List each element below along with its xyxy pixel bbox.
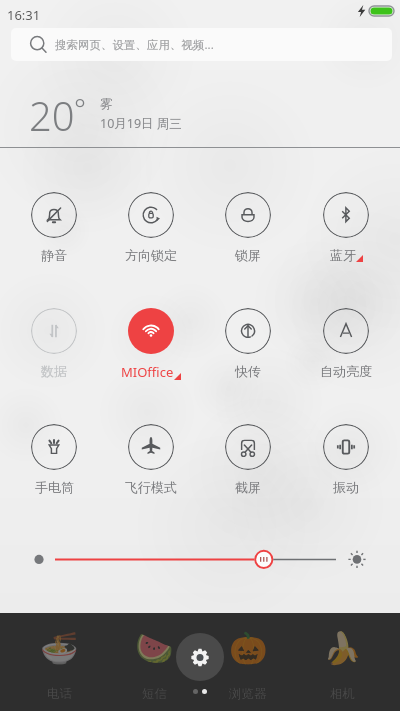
button[interactable]: MIOffice: [103, 304, 199, 382]
staticText: 数据: [41, 363, 67, 379]
staticText: 相机: [330, 686, 355, 702]
staticText: 🍌: [323, 630, 362, 666]
staticText: 电话: [47, 686, 72, 702]
staticText: 雾: [100, 96, 113, 112]
staticText: MIOffice: [121, 363, 174, 381]
button[interactable]: 方向锁定: [103, 188, 199, 266]
staticText: 快传: [235, 363, 261, 379]
staticText: 🎃: [229, 630, 268, 666]
button[interactable]: 🍌: [296, 613, 388, 711]
button[interactable]: 快传: [200, 304, 296, 382]
button[interactable]: 20: [0, 80, 400, 140]
button[interactable]: 截屏: [200, 420, 296, 498]
staticText: 方向锁定: [125, 247, 177, 263]
staticText: 浏览器: [229, 686, 267, 702]
button[interactable]: Settings: [176, 633, 224, 681]
button[interactable]: 🍉: [108, 613, 200, 711]
button[interactable]: 🎃: [202, 613, 294, 711]
button[interactable]: 振动: [298, 420, 394, 498]
button[interactable]: 数据: [6, 304, 102, 382]
button[interactable]: 飞行模式: [103, 420, 199, 498]
staticText: 🍜: [40, 630, 79, 666]
staticText: 搜索网页、设置、应用、视频...: [55, 37, 214, 53]
staticText: 20: [29, 88, 75, 142]
staticText: 10月19日 周三: [100, 115, 182, 132]
staticText: 16:31: [7, 6, 41, 24]
staticText: 锁屏: [235, 247, 261, 263]
button[interactable]: 自动亮度: [298, 304, 394, 382]
staticText: 手电筒: [35, 479, 74, 495]
button[interactable]: 锁屏: [200, 188, 296, 266]
button[interactable]: 蓝牙: [298, 188, 394, 266]
button[interactable]: 🍜: [13, 613, 105, 711]
button[interactable]: [0, 536, 400, 582]
staticText: °: [74, 89, 86, 127]
staticText: 🍉: [135, 630, 174, 666]
staticText: 短信: [142, 686, 167, 702]
staticText: 静音: [41, 247, 67, 263]
staticText: 截屏: [235, 479, 261, 495]
staticText: 自动亮度: [320, 363, 372, 379]
staticText: 飞行模式: [125, 479, 177, 495]
button[interactable]: 静音: [6, 188, 102, 266]
staticText: 蓝牙: [330, 247, 356, 263]
button[interactable]: 手电筒: [6, 420, 102, 498]
button[interactable]: 搜索网页、设置、应用、视频...: [11, 28, 392, 61]
staticText: 振动: [333, 479, 359, 495]
